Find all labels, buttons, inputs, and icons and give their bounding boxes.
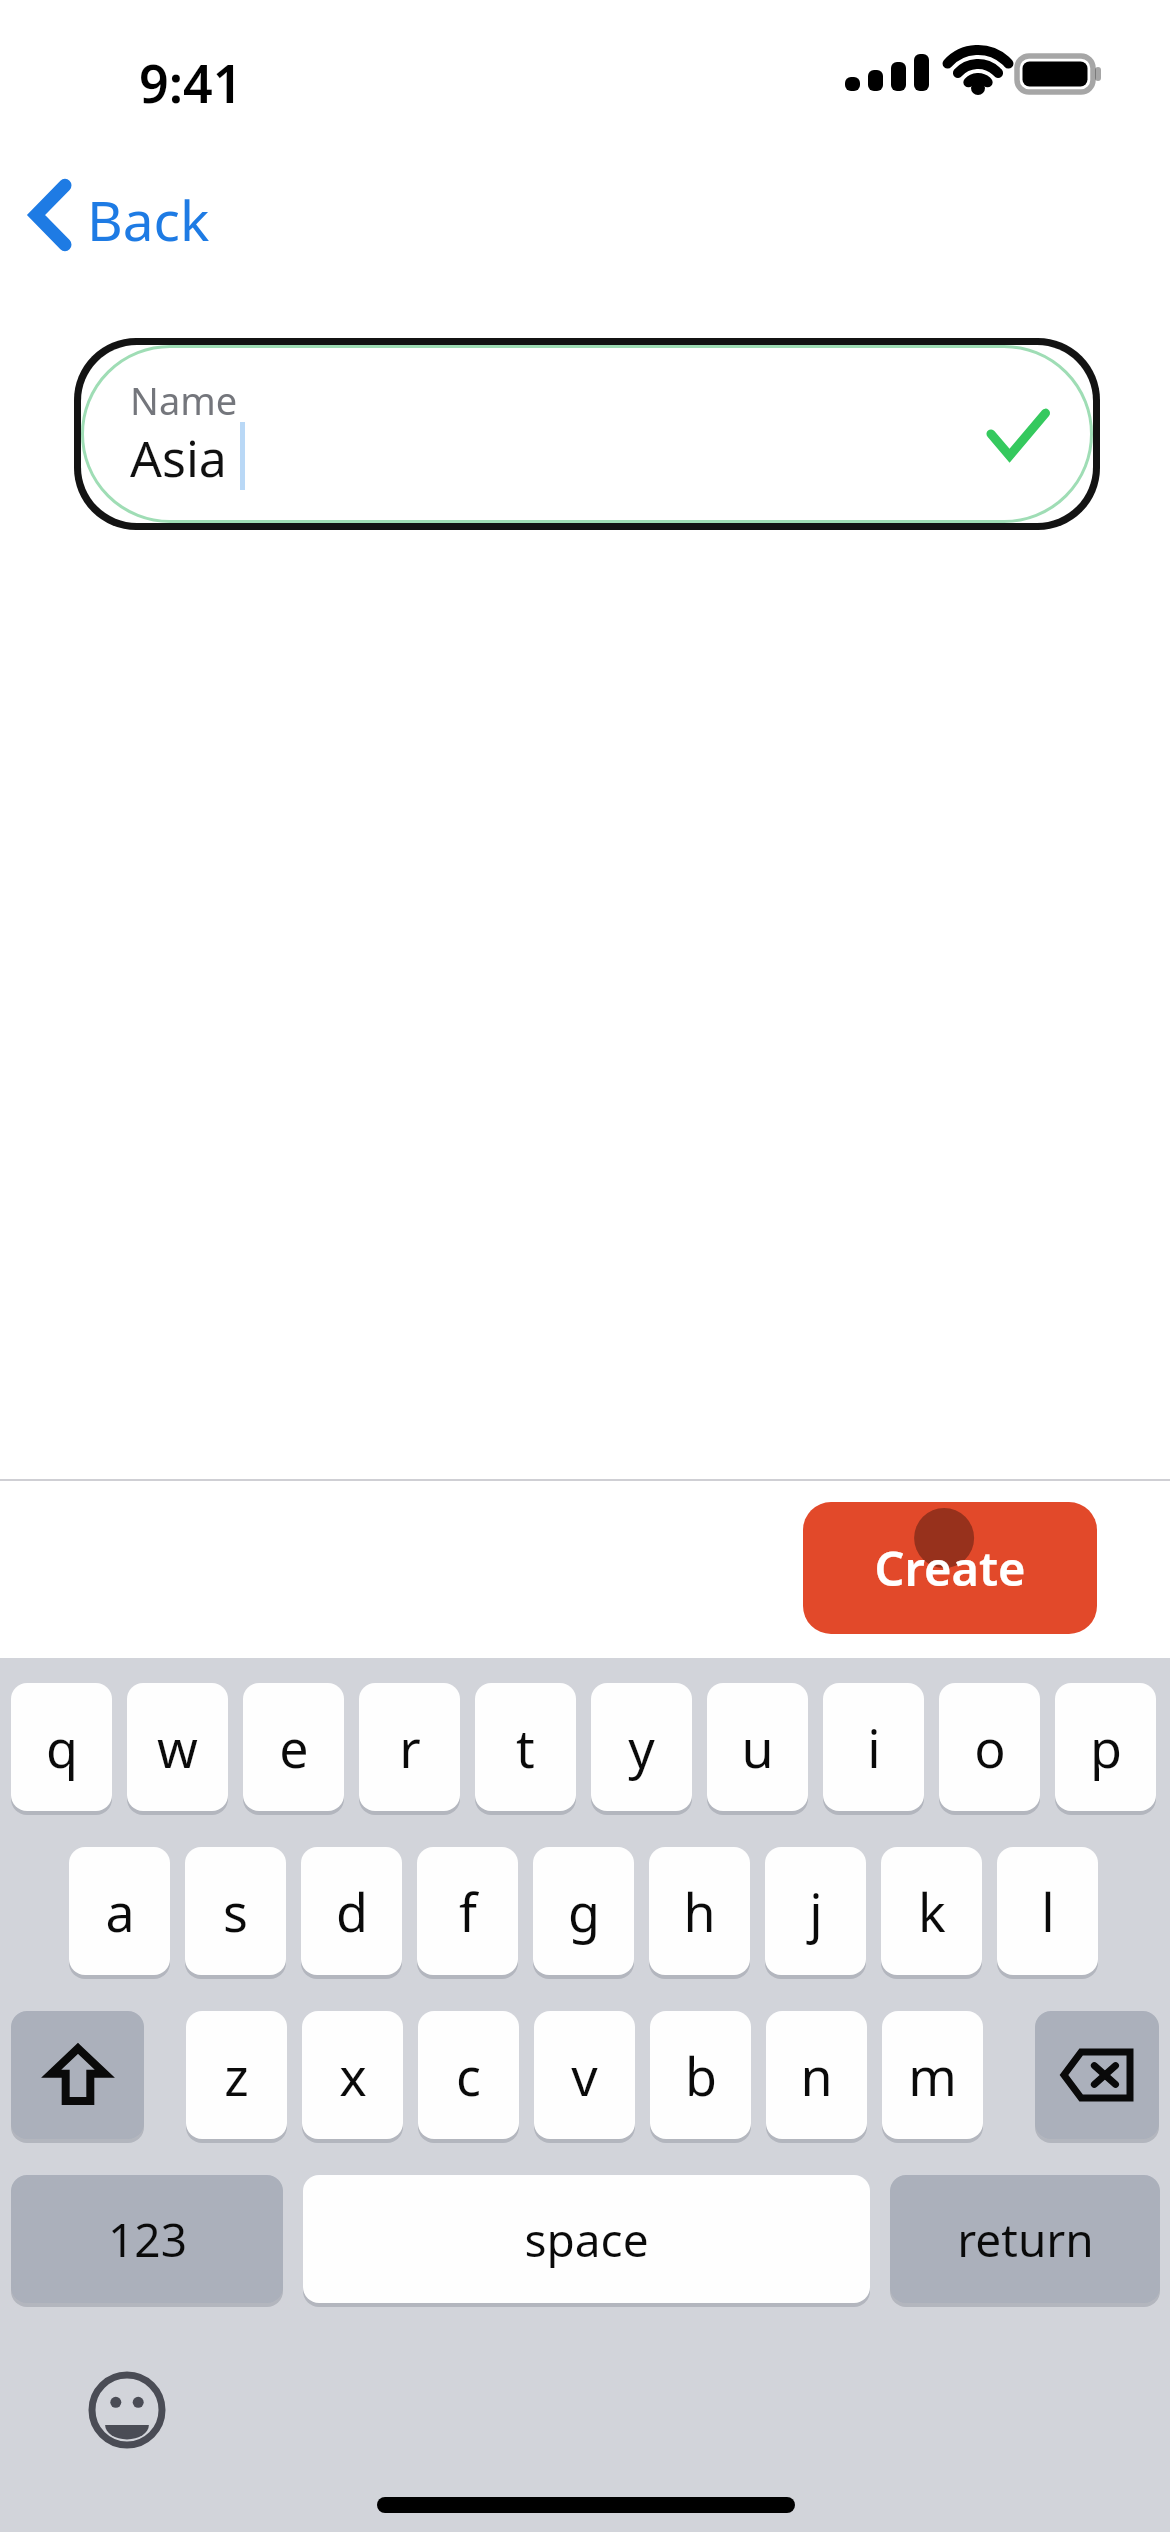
staticText: e xyxy=(279,1712,309,1783)
button[interactable]: c xyxy=(418,2011,519,2139)
staticText: b xyxy=(685,2040,717,2111)
staticText: w xyxy=(157,1712,198,1783)
button[interactable]: x xyxy=(302,2011,403,2139)
button[interactable]: f xyxy=(417,1847,518,1975)
button[interactable]: Create xyxy=(803,1502,1097,1634)
button[interactable]: Shift xyxy=(11,2011,144,2139)
staticText: return xyxy=(957,2208,1094,2271)
staticText: u xyxy=(741,1712,774,1783)
staticText: Name xyxy=(130,374,238,426)
button[interactable]: q xyxy=(11,1683,112,1811)
staticText: v xyxy=(571,2040,598,2111)
staticText: n xyxy=(800,2040,833,2111)
staticText: p xyxy=(1090,1712,1122,1783)
button[interactable]: Emoji keyboard xyxy=(88,2371,166,2449)
staticText: m xyxy=(908,2040,957,2111)
staticText: 9:41 xyxy=(139,47,243,118)
staticText: space xyxy=(524,2208,649,2271)
staticText: d xyxy=(336,1876,368,1947)
button[interactable]: k xyxy=(881,1847,982,1975)
button[interactable]: i xyxy=(823,1683,924,1811)
staticText: q xyxy=(46,1712,78,1783)
button[interactable]: v xyxy=(534,2011,635,2139)
button[interactable]: e xyxy=(243,1683,344,1811)
staticText: g xyxy=(568,1876,600,1947)
staticText: Create xyxy=(874,1536,1026,1600)
staticText: Asia xyxy=(130,424,227,492)
button[interactable]: Backspace xyxy=(1035,2011,1159,2139)
button[interactable]: s xyxy=(185,1847,286,1975)
staticText: Back xyxy=(87,182,210,257)
staticText: s xyxy=(223,1876,248,1947)
button[interactable]: o xyxy=(939,1683,1040,1811)
button[interactable]: b xyxy=(650,2011,751,2139)
button[interactable]: l xyxy=(997,1847,1098,1975)
staticText: z xyxy=(224,2040,249,2111)
button[interactable]: space xyxy=(303,2175,870,2303)
staticText: h xyxy=(683,1876,716,1947)
button[interactable]: Name xyxy=(74,338,1100,530)
staticText: x xyxy=(339,2040,367,2111)
staticText: i xyxy=(867,1712,881,1783)
staticText: a xyxy=(105,1876,135,1947)
button[interactable]: w xyxy=(127,1683,228,1811)
staticText: t xyxy=(516,1712,535,1783)
button[interactable]: n xyxy=(766,2011,867,2139)
button[interactable]: Back xyxy=(14,160,254,270)
button[interactable]: m xyxy=(882,2011,983,2139)
button[interactable]: d xyxy=(301,1847,402,1975)
button[interactable]: h xyxy=(649,1847,750,1975)
staticText: j xyxy=(809,1876,823,1947)
staticText: 123 xyxy=(108,2208,187,2271)
staticText: l xyxy=(1041,1876,1055,1947)
staticText: o xyxy=(974,1712,1006,1783)
button[interactable]: t xyxy=(475,1683,576,1811)
button[interactable]: y xyxy=(591,1683,692,1811)
button[interactable]: return xyxy=(890,2175,1160,2303)
staticText: r xyxy=(399,1712,421,1783)
button[interactable]: r xyxy=(359,1683,460,1811)
button[interactable]: u xyxy=(707,1683,808,1811)
staticText: k xyxy=(918,1876,946,1947)
staticText: c xyxy=(456,2040,481,2111)
button[interactable]: a xyxy=(69,1847,170,1975)
button[interactable]: j xyxy=(765,1847,866,1975)
button[interactable]: p xyxy=(1055,1683,1156,1811)
button[interactable]: g xyxy=(533,1847,634,1975)
button[interactable]: z xyxy=(186,2011,287,2139)
staticText: f xyxy=(459,1876,477,1947)
staticText: y xyxy=(628,1712,655,1783)
button[interactable]: 123 xyxy=(11,2175,283,2303)
